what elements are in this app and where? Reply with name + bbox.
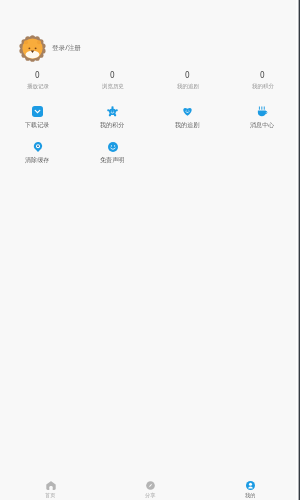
staticText: 0	[260, 69, 265, 80]
button[interactable]: 消息中心	[225, 106, 300, 129]
staticText: 0	[185, 69, 190, 80]
staticText: 我的追剧	[175, 121, 200, 129]
staticText: 浏览历史	[102, 83, 124, 90]
other: 我的	[246, 481, 255, 490]
button[interactable]: 免责声明	[75, 141, 150, 164]
staticText: 0	[110, 69, 115, 80]
staticText: 首页	[45, 492, 56, 499]
button[interactable]: 我的追剧	[150, 106, 225, 129]
staticText: 消息中心	[250, 121, 275, 129]
staticText: 下载记录	[25, 121, 50, 129]
staticText: 我的追剧	[177, 83, 199, 90]
staticText: 免责声明	[100, 156, 125, 164]
staticText: 播放记录	[27, 83, 49, 90]
other: 分享	[146, 481, 155, 490]
button[interactable]: 我的	[200, 481, 300, 499]
staticText: 我的积分	[100, 121, 125, 129]
staticText: 登录/注册	[52, 43, 81, 52]
button[interactable]: 首页	[0, 481, 100, 499]
button[interactable]: 0	[150, 69, 225, 90]
staticText: 我的积分	[252, 83, 274, 90]
button[interactable]: 我的积分	[75, 106, 150, 129]
staticText: 我的	[245, 492, 256, 499]
button[interactable]: 0	[0, 69, 75, 90]
button[interactable]: 清除缓存	[0, 141, 75, 164]
button[interactable]: 0	[75, 69, 150, 90]
button[interactable]: 0	[225, 69, 300, 90]
staticText: 0	[35, 69, 40, 80]
button[interactable]: 分享	[100, 481, 200, 499]
other: 首页	[46, 481, 56, 490]
button[interactable]: 登录/注册	[0, 33, 300, 61]
staticText: 清除缓存	[25, 156, 50, 164]
staticText: 分享	[145, 492, 156, 499]
button[interactable]: 下载记录	[0, 106, 75, 129]
